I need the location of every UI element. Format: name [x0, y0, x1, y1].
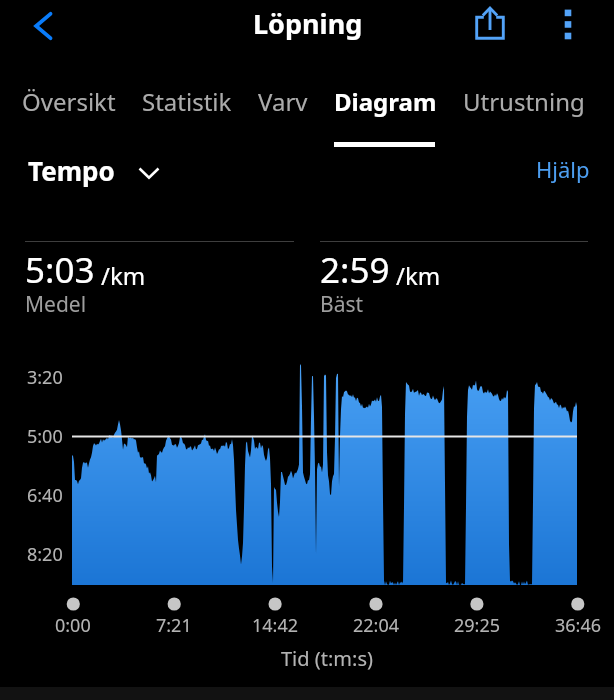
staticText: 5:00 [27, 424, 63, 449]
staticText: Löpning [253, 5, 363, 42]
staticText: Tid (t:m:s) [281, 645, 373, 672]
staticText: /km [101, 259, 146, 292]
button[interactable]: Diagram [334, 85, 437, 118]
staticText: Hjälp [536, 154, 590, 184]
button[interactable]: More options [544, 0, 592, 48]
staticText: 29:25 [454, 613, 501, 638]
button[interactable]: Hjälp [536, 154, 590, 184]
staticText: 14:42 [252, 613, 299, 638]
staticText: Statistik [142, 85, 232, 118]
staticText: 3:20 [27, 365, 63, 390]
button[interactable]: Back [19, 2, 67, 50]
staticText: 8:20 [27, 542, 63, 567]
staticText: 0:00 [55, 613, 91, 638]
button[interactable]: Tempo [28, 153, 161, 188]
staticText: Varv [258, 85, 308, 118]
button[interactable]: Utrustning [463, 85, 585, 118]
staticText: Översikt [22, 85, 116, 118]
staticText: 6:40 [27, 483, 63, 508]
staticText: 5:03 [25, 246, 95, 294]
staticText: Medel [25, 290, 87, 319]
button[interactable]: Översikt [22, 85, 116, 118]
staticText: 7:21 [156, 613, 192, 638]
staticText: /km [396, 259, 441, 292]
staticText: Tempo [28, 153, 115, 188]
staticText: 2:59 [320, 246, 390, 294]
staticText: Diagram [334, 85, 437, 118]
button[interactable]: Share [465, 0, 515, 47]
button[interactable]: Statistik [142, 85, 232, 118]
staticText: 36:46 [555, 613, 602, 638]
staticText: Utrustning [463, 85, 585, 118]
staticText: Bäst [320, 290, 364, 319]
staticText: 22:04 [353, 613, 400, 638]
button[interactable]: Varv [258, 85, 308, 118]
